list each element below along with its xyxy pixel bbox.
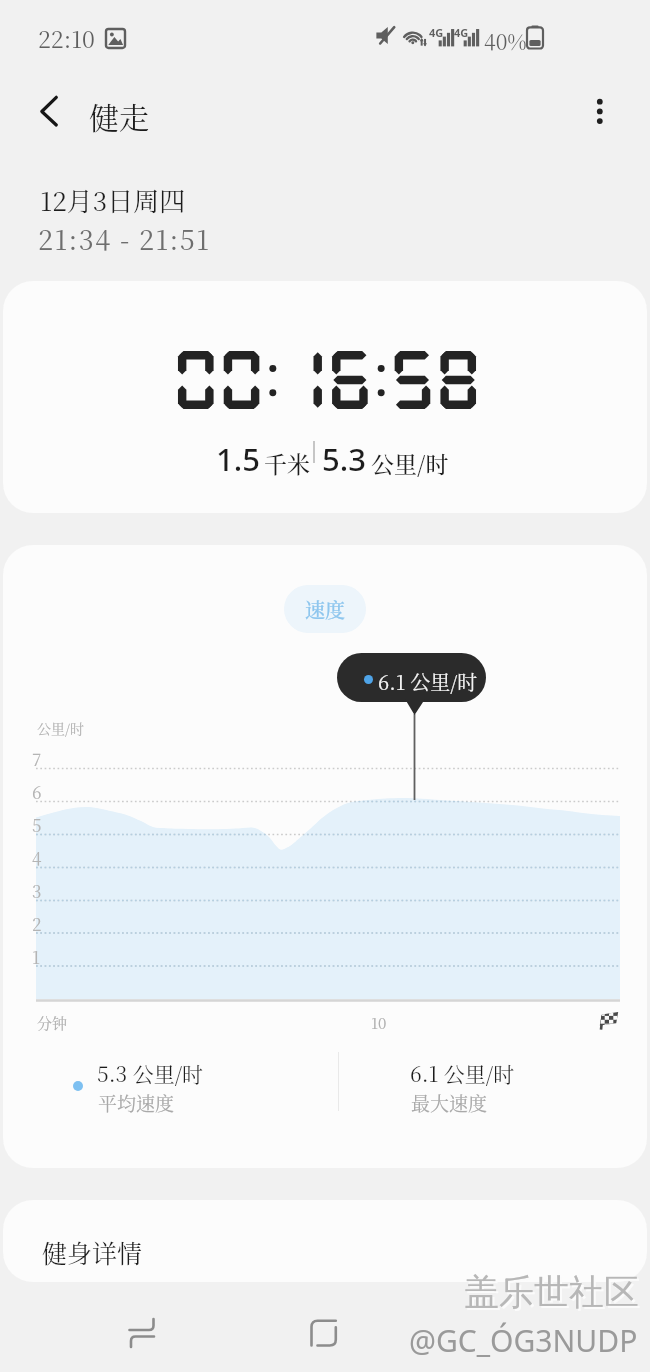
staticText: 10 [371,1012,387,1034]
staticText: 3 [32,878,42,902]
button[interactable]: Recent apps [116,1306,168,1358]
staticText: 盖乐世社区 [466,1272,641,1316]
staticText: 4G [454,25,469,40]
staticText: 5 [32,812,42,836]
staticText: 4 [32,845,42,869]
staticText: 5.3 公里/时 [97,1058,204,1088]
staticText: 平均速度 [98,1089,175,1116]
staticText: 盖乐世社区 [464,1270,639,1314]
staticText: 5.3 [322,438,366,480]
staticText: 12月3日周四 [40,181,186,218]
staticText: 6.1 公里/时 [410,1058,515,1088]
staticText: 2 [32,911,42,935]
staticText: 6 [32,779,42,803]
staticText: 健身详情 [42,1234,143,1270]
staticText: 公里/时 [37,718,84,738]
staticText: 7 [32,746,42,770]
staticText: 公里/时 [371,447,449,480]
button[interactable] [337,653,486,702]
staticText: 1.5 [216,438,260,480]
staticText: 最大速度 [411,1089,488,1116]
button[interactable]: Back [22,83,78,139]
staticText: 4G [429,25,444,40]
staticText: 6.1 公里/时 [378,667,478,696]
staticText: 1 [32,944,41,968]
staticText: 分钟 [37,1012,68,1034]
staticText: 21:34 - 21:51 [38,219,211,258]
button[interactable]: Back [472,1308,524,1360]
button[interactable]: 速度 [284,585,366,633]
button[interactable]: 健身详情 [3,1200,647,1282]
staticText: 40% [484,26,527,56]
staticText: 速度 [305,595,345,624]
button[interactable]: 5.3 公里/时 [3,545,647,1168]
button[interactable]: Home [298,1308,350,1360]
staticText: 千米 [264,447,310,480]
staticText: 22:10 [38,22,95,55]
staticText: @GC_ÓG3NUDP [409,1320,638,1361]
staticText: 健走 [89,94,149,137]
button[interactable]: More options [573,83,629,139]
